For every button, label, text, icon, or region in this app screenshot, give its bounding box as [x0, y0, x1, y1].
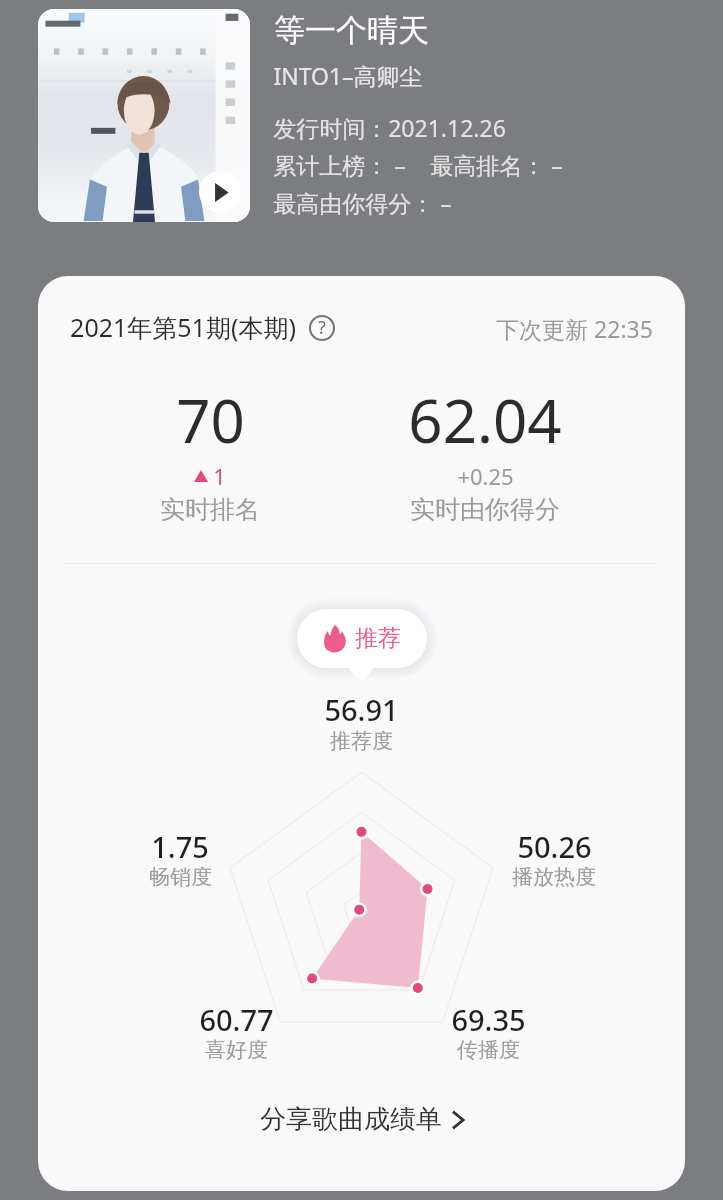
button[interactable]: 69.35 [388, 1000, 588, 1062]
button[interactable]: 分享歌曲成绩单 [200, 1090, 523, 1148]
staticText: 推荐 [355, 624, 401, 653]
button[interactable]: Play [199, 171, 241, 213]
staticText: INTO1–高卿尘 [273, 60, 423, 91]
button[interactable]: 60.77 [136, 1000, 336, 1062]
button[interactable]: 等一个晴天 [274, 11, 429, 50]
button[interactable]: 50.26 [454, 827, 654, 889]
staticText: 56.91 [324, 690, 399, 729]
staticText: 1.75 [151, 827, 209, 866]
staticText: 累计上榜： – [273, 149, 406, 180]
staticText: ? [318, 315, 326, 340]
button[interactable]: 1.75 [80, 827, 280, 889]
staticText: 70 [176, 379, 245, 461]
button[interactable]: INTO1–高卿尘 [273, 60, 423, 91]
button[interactable]: 推荐 [297, 609, 427, 668]
staticText: 69.35 [451, 1000, 526, 1039]
staticText: 传播度 [457, 1037, 520, 1063]
staticText: 推荐度 [330, 728, 393, 754]
staticText: 最高由你得分： – [273, 187, 452, 218]
staticText: 最高排名： – [430, 149, 563, 180]
button[interactable]: Help [309, 315, 335, 341]
staticText: 下次更新 22:35 [496, 313, 653, 344]
staticText: +0.25 [457, 461, 514, 491]
button[interactable]: Play [38, 9, 250, 222]
staticText: 2021年第51期(本期) [70, 310, 296, 344]
staticText: 畅销度 [149, 864, 212, 890]
staticText: 62.04 [408, 379, 562, 461]
staticText: 60.77 [199, 1000, 274, 1039]
staticText: 等一个晴天 [274, 11, 429, 50]
staticText: 播放热度 [512, 864, 596, 890]
staticText: 50.26 [517, 827, 592, 866]
staticText: 分享歌曲成绩单 [260, 1103, 442, 1136]
staticText: 发行时间：2021.12.26 [273, 112, 506, 143]
button[interactable]: 70 [80, 379, 340, 524]
staticText: 实时由你得分 [410, 494, 560, 525]
staticText: 1 [213, 461, 226, 491]
staticText: 喜好度 [205, 1037, 268, 1063]
staticText: 实时排名 [160, 494, 260, 525]
button[interactable]: 62.04 [355, 379, 615, 524]
